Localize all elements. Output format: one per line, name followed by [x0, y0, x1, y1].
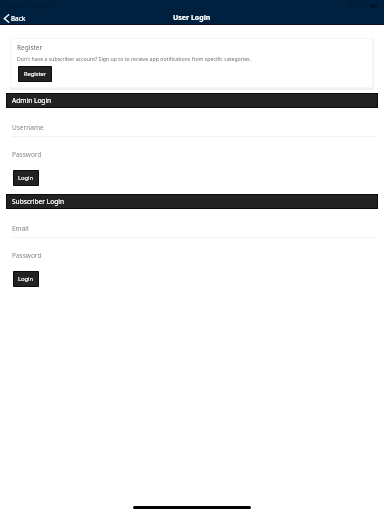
staticText: 100% — [354, 2, 367, 9]
staticText: Register — [17, 43, 43, 52]
staticText: Password — [12, 150, 42, 159]
button[interactable]: Admin Login — [6, 93, 378, 108]
staticText: Admin Login — [12, 96, 52, 105]
staticText: Don't have a subscriber account? Sign up… — [17, 55, 251, 62]
staticText: Password — [12, 251, 42, 260]
button[interactable]: Login — [13, 170, 39, 186]
staticText: Register — [24, 70, 47, 78]
button[interactable]: Password — [6, 246, 378, 270]
button[interactable]: Subscriber Login — [6, 194, 378, 209]
button[interactable]: Login — [13, 271, 39, 287]
staticText: Back — [11, 14, 26, 23]
staticText: Subscriber Login — [12, 197, 64, 206]
button[interactable]: Username — [6, 118, 378, 142]
button[interactable]: Password — [6, 145, 378, 169]
button[interactable]: Back — [0, 13, 32, 24]
staticText: Username — [12, 123, 44, 132]
staticText: Login — [18, 275, 34, 283]
button[interactable]: Email — [6, 219, 378, 243]
staticText: 9:20 AM Wed Sep 4 — [5, 2, 55, 9]
staticText: User Login — [173, 13, 211, 23]
staticText: Login — [18, 174, 34, 182]
button[interactable]: Register — [18, 66, 52, 82]
staticText: Email — [12, 224, 29, 233]
